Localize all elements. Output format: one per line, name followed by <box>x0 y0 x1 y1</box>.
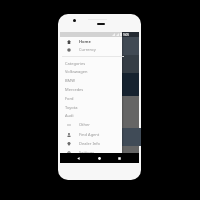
button[interactable]: Volkswagen <box>60 67 122 76</box>
staticText: Mercedes <box>65 87 84 92</box>
staticText: Categories <box>65 61 86 66</box>
button[interactable]: Home <box>60 37 122 46</box>
button[interactable]: Other <box>60 120 122 129</box>
button[interactable]: Recent apps <box>116 155 123 162</box>
staticText: Ford <box>65 96 74 101</box>
staticText: Home <box>79 39 91 44</box>
button[interactable]: Back <box>75 155 82 162</box>
button[interactable]: Mercedes <box>60 85 122 94</box>
button[interactable]: Find Agent <box>60 130 122 139</box>
button[interactable]: Dealer Info <box>60 139 122 148</box>
button[interactable]: Audi <box>60 111 122 120</box>
button[interactable]: BMW <box>60 76 122 85</box>
button[interactable]: Categories <box>60 59 122 68</box>
staticText: Other <box>79 122 90 127</box>
staticText: Currency <box>79 47 96 52</box>
staticText: Toyota <box>65 105 78 110</box>
staticText: Find Agent <box>79 132 100 137</box>
button[interactable]: Toyota <box>60 103 122 112</box>
staticText: 9:05 <box>123 33 130 36</box>
button[interactable]: Ford <box>60 94 122 103</box>
button[interactable]: Home <box>96 155 103 162</box>
button[interactable]: Settings <box>60 148 122 157</box>
staticText: BMW <box>65 78 75 83</box>
staticText: Audi <box>65 113 74 118</box>
staticText: Volkswagen <box>65 69 88 74</box>
button[interactable]: Currency <box>60 45 122 54</box>
staticText: Dealer Info <box>79 141 101 146</box>
staticText: Settings <box>79 150 95 155</box>
